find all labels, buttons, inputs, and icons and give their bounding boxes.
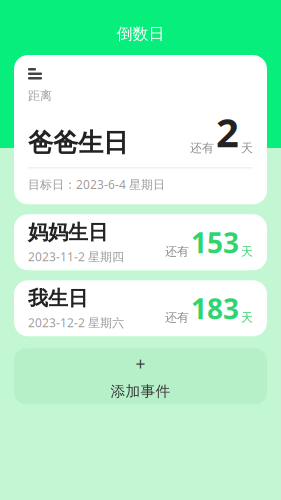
staticText: 153 [191, 224, 239, 261]
staticText: 天 [241, 141, 253, 155]
button[interactable]: 妈妈生日 [14, 214, 267, 270]
staticText: 添加事件 [110, 382, 170, 400]
staticText: 距离 [28, 88, 52, 103]
staticText: 183 [191, 290, 239, 327]
staticText: + [135, 352, 145, 375]
staticText: 还有 [190, 141, 214, 155]
staticText: 目标日：2023-6-4 星期日 [28, 176, 165, 192]
staticText: 倒数日 [116, 24, 164, 44]
button[interactable]: 距离 [14, 55, 267, 204]
staticText: 天 [241, 244, 253, 259]
button[interactable]: 我生日 [14, 280, 267, 336]
staticText: 爸爸生日 [28, 127, 128, 158]
button[interactable]: + [14, 348, 267, 404]
staticText: 2023-12-2 星期六 [28, 315, 124, 330]
staticText: 2 [216, 105, 239, 158]
staticText: 妈妈生日 [28, 220, 108, 245]
staticText: 2023-11-2 星期四 [28, 249, 124, 264]
staticText: 还有 [165, 244, 189, 259]
staticText: 还有 [165, 310, 189, 325]
staticText: 天 [241, 310, 253, 325]
staticText: 我生日 [28, 286, 88, 311]
